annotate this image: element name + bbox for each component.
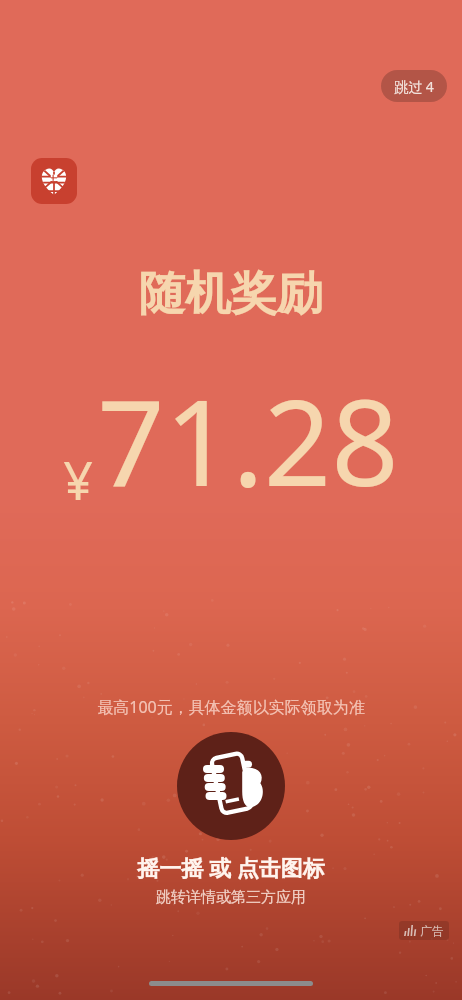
button[interactable]: 广告 (404, 923, 444, 938)
button[interactable]: App icon (31, 158, 77, 204)
staticText: 广告 (420, 923, 444, 938)
staticText: ¥ (63, 444, 93, 515)
staticText: 跳转详情或第三方应用 (156, 888, 306, 907)
staticText: 随机奖励 (139, 265, 323, 323)
staticText: 最高100元，具体金额以实际领取为准 (97, 696, 365, 718)
button[interactable]: 跳过 4 (381, 70, 447, 102)
staticText: 71.28 (97, 360, 399, 521)
button[interactable]: 摇一摇或点击图标 (177, 732, 285, 840)
staticText: 跳过 4 (394, 77, 434, 96)
staticText: 摇一摇 或 点击图标 (137, 852, 325, 882)
